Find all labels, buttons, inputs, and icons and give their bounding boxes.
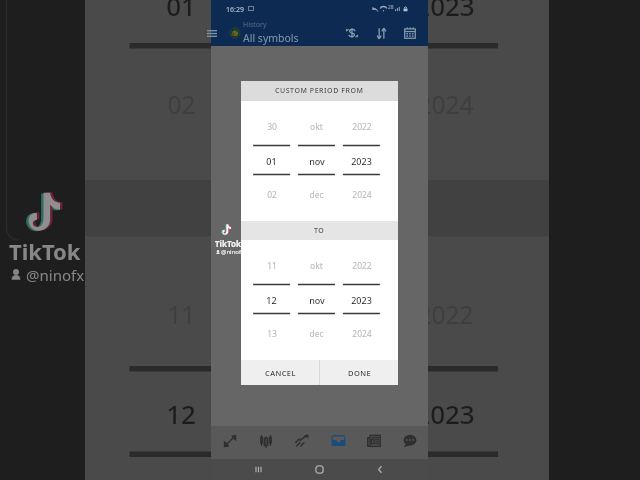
button[interactable]: Chat	[392, 426, 428, 459]
staticText: 12	[266, 294, 277, 306]
button[interactable]: Trade	[284, 426, 320, 459]
staticText: TikTok	[9, 236, 81, 266]
button[interactable]: okt	[294, 240, 339, 360]
button[interactable]: 30	[249, 101, 294, 221]
staticText: 2022	[352, 121, 372, 133]
staticText: 30	[267, 121, 277, 133]
staticText: 2024	[352, 189, 372, 201]
staticText: 02	[267, 189, 277, 201]
staticText: 11	[267, 260, 277, 272]
button[interactable]: Recents	[245, 459, 271, 480]
button[interactable]: Currency	[342, 23, 362, 43]
staticText: nov	[289, 396, 335, 431]
button[interactable]: History	[320, 426, 356, 459]
staticText: 2023	[415, 0, 475, 23]
staticText: okt	[310, 260, 323, 272]
button[interactable]: okt	[294, 101, 339, 221]
staticText: nov	[309, 294, 325, 306]
staticText: 13	[267, 328, 277, 340]
staticText: 2023	[415, 396, 475, 431]
staticText: nov	[309, 155, 325, 167]
staticText: CUSTOM PERIOD FROM	[275, 86, 364, 96]
staticText: TO	[314, 226, 325, 236]
button[interactable]: CANCEL	[241, 360, 319, 385]
staticText: 2023	[351, 155, 372, 167]
button[interactable]: 2022	[339, 240, 384, 360]
staticText: 01	[166, 0, 196, 23]
staticText: 16:29	[226, 5, 244, 15]
staticText: @ninofx	[26, 265, 85, 285]
button[interactable]: Home	[306, 459, 332, 480]
button[interactable]: Sort	[371, 23, 391, 43]
staticText: History	[243, 20, 267, 30]
button[interactable]: Back	[367, 459, 393, 480]
staticText: TikTok	[215, 238, 241, 249]
staticText: DONE	[348, 368, 371, 378]
staticText: okt	[310, 121, 323, 133]
staticText: 2022	[417, 298, 474, 331]
button[interactable]: Calendar	[400, 23, 420, 43]
staticText: dec	[292, 88, 333, 121]
staticText: All symbols	[243, 31, 299, 45]
staticText: 2023	[351, 294, 372, 306]
staticText: CANCEL	[265, 368, 296, 378]
button[interactable]: DONE	[320, 360, 398, 385]
staticText: okt	[294, 298, 331, 331]
staticText: 01	[266, 155, 277, 167]
staticText: 02	[167, 88, 196, 121]
button[interactable]: News	[356, 426, 392, 459]
button[interactable]: Menu	[205, 26, 219, 40]
button[interactable]: 2022	[339, 101, 384, 221]
button[interactable]: Charts	[248, 426, 284, 459]
staticText: 12	[166, 396, 196, 431]
staticText: @ninofx	[221, 248, 245, 256]
staticText: dec	[309, 328, 324, 340]
staticText: dec	[309, 189, 324, 201]
staticText: 2024	[352, 328, 372, 340]
staticText: 28	[388, 4, 394, 11]
button[interactable]: 11	[249, 240, 294, 360]
staticText: 11	[167, 298, 196, 331]
staticText: 2024	[417, 88, 474, 121]
button[interactable]: Quotes	[211, 426, 248, 459]
staticText: 2022	[352, 260, 372, 272]
